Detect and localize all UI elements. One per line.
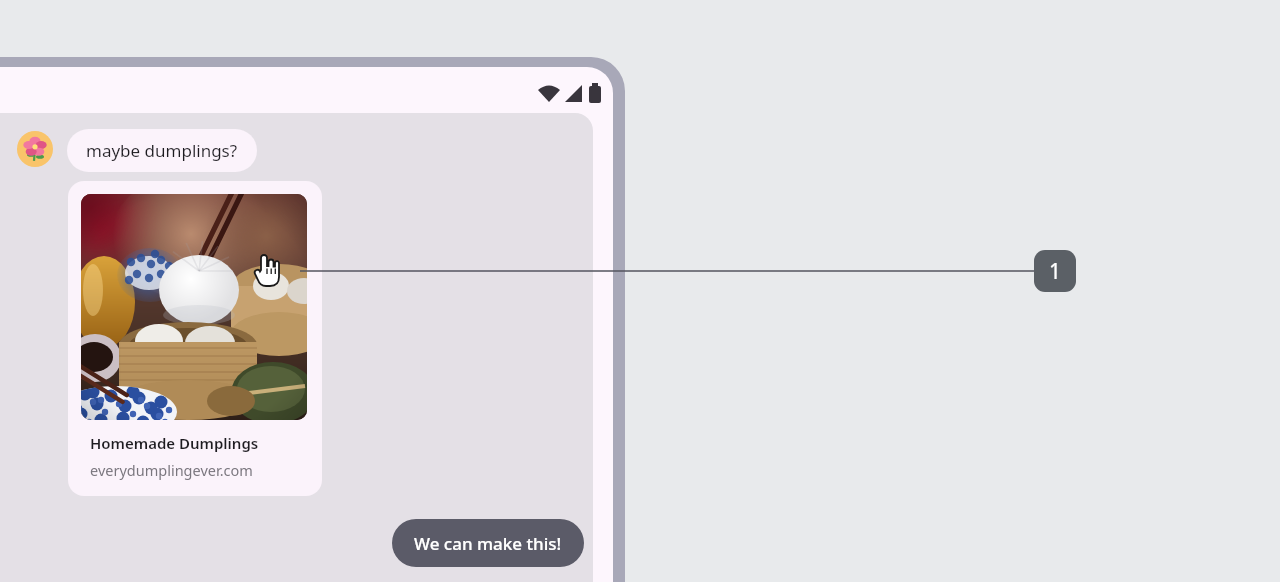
staticText: everydumplingever.com (90, 460, 253, 480)
button[interactable]: We can make this! (392, 519, 584, 567)
staticText: maybe dumplings? (86, 139, 238, 162)
staticText: 1 (1049, 257, 1062, 286)
button[interactable]: Contact avatar (17, 131, 53, 167)
staticText: We can make this! (414, 532, 562, 555)
staticText: Homemade Dumplings (90, 433, 259, 453)
button[interactable]: Annotation 1 (1034, 250, 1076, 292)
button[interactable]: Homemade Dumplings (68, 181, 322, 496)
button[interactable]: maybe dumplings? (67, 129, 257, 172)
